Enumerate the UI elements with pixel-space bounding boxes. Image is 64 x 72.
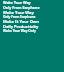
staticText: Wake Your Way Only	[3, 29, 36, 33]
staticText: Only From Earphone	[3, 5, 40, 10]
staticText: Daily Productivity	[3, 24, 39, 29]
staticText: Wake Your Way	[3, 10, 34, 15]
staticText: Make It Your Own	[3, 19, 39, 24]
staticText: Wake Your Way	[3, 0, 31, 5]
staticText: Only From Earphone	[3, 15, 36, 19]
